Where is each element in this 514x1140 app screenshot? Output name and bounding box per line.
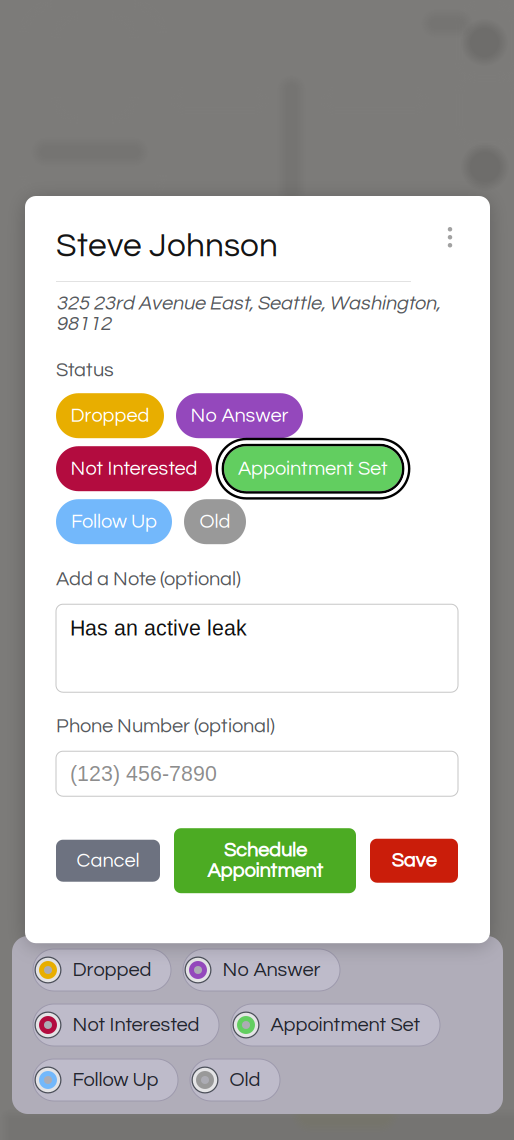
staticText: Not Interested (72, 1015, 199, 1035)
staticText: Add a Note (optional) (56, 569, 241, 589)
button[interactable]: Cancel (56, 840, 160, 882)
staticText: No Answer (222, 960, 320, 980)
staticText: Old (229, 1070, 260, 1090)
staticText: (123) 456-7890 (70, 762, 217, 786)
button[interactable]: Dropped (33, 949, 171, 991)
button[interactable]: Dropped (56, 393, 164, 438)
staticText: Phone Number (optional) (56, 716, 275, 736)
staticText: Follow Up (72, 1070, 158, 1090)
staticText: No Answer (190, 405, 288, 426)
staticText: Steve Johnson (56, 229, 278, 263)
button[interactable]: No Answer (176, 393, 303, 438)
staticText: Status (56, 360, 114, 380)
staticText: Old (199, 511, 230, 532)
button[interactable]: No Answer (183, 949, 340, 991)
button[interactable]: Schedule Appointment (174, 828, 356, 893)
button[interactable]: More options (431, 230, 484, 259)
staticText: Save (391, 850, 436, 871)
staticText: 325 23rd Avenue East, Seattle, Washingto… (56, 293, 440, 334)
staticText: Dropped (70, 405, 149, 426)
button[interactable]: Appointment Set (231, 1004, 440, 1046)
button[interactable]: Not Interested (33, 1004, 219, 1046)
staticText: Schedule Appointment (207, 840, 323, 881)
staticText: Cancel (76, 850, 139, 871)
button[interactable]: Appointment Set (224, 446, 402, 491)
button[interactable]: Follow Up (33, 1059, 178, 1101)
button[interactable]: Old (184, 499, 246, 544)
staticText: Follow Up (71, 511, 157, 532)
staticText: Appointment Set (238, 458, 388, 479)
button[interactable]: Old (190, 1059, 280, 1101)
button[interactable]: Save (370, 839, 458, 883)
staticText: Not Interested (70, 458, 197, 479)
staticText: Has an active leak (70, 616, 247, 640)
staticText: Appointment Set (270, 1015, 420, 1035)
button[interactable]: Not Interested (56, 446, 212, 491)
staticText: Dropped (72, 960, 151, 980)
button[interactable]: Follow Up (56, 499, 172, 544)
